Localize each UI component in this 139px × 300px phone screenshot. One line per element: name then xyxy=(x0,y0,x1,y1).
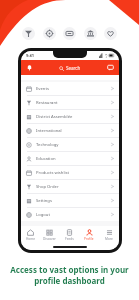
staticText: Products wishlist xyxy=(36,170,111,176)
button[interactable]: Settings xyxy=(21,194,119,207)
button[interactable]: Bank xyxy=(84,27,97,40)
staticText: Settings xyxy=(36,198,111,204)
staticText: Profile xyxy=(84,237,94,241)
button[interactable]: Discover xyxy=(40,226,59,244)
button[interactable]: Home xyxy=(21,226,40,244)
button[interactable]: Shop Order xyxy=(21,180,119,193)
staticText: Restaurant xyxy=(36,100,111,106)
staticText: Home xyxy=(26,237,36,241)
button[interactable]: More xyxy=(99,226,119,244)
button[interactable]: Feeds xyxy=(59,226,79,244)
button[interactable]: Events xyxy=(21,82,119,95)
staticText: District Assemblée xyxy=(36,114,111,120)
button[interactable]: Inbox xyxy=(63,27,76,40)
button[interactable]: District Assemblée xyxy=(21,110,119,123)
staticText: International xyxy=(36,128,111,134)
button[interactable]: International xyxy=(21,124,119,137)
staticText: 9:41 xyxy=(26,53,34,58)
staticText: Technology xyxy=(36,142,111,148)
button[interactable]: Favourites xyxy=(104,27,117,40)
staticText: Events xyxy=(36,86,111,92)
button[interactable]: Products wishlist xyxy=(21,166,119,179)
button[interactable]: Restaurant xyxy=(21,96,119,109)
staticText: Search xyxy=(66,65,81,71)
staticText: Logout xyxy=(36,212,111,218)
staticText: More xyxy=(105,237,113,241)
button[interactable]: Messages xyxy=(107,64,114,71)
staticText: Shop Order xyxy=(36,184,111,190)
button[interactable]: Settings xyxy=(43,27,56,40)
button[interactable]: Profile xyxy=(79,226,99,244)
button[interactable]: Filter xyxy=(22,27,35,40)
staticText: Education xyxy=(36,156,111,162)
button[interactable]: Logout xyxy=(21,208,119,221)
staticText: Feeds xyxy=(65,237,74,241)
staticText: Access to vast options in your profile d… xyxy=(10,264,129,286)
staticText: Discover xyxy=(43,237,56,241)
button[interactable]: Technology xyxy=(21,138,119,151)
button[interactable]: Education xyxy=(21,152,119,165)
